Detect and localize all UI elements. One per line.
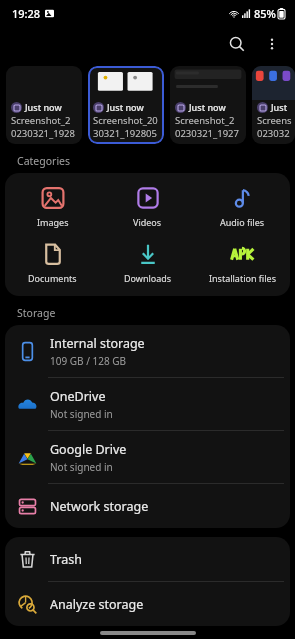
staticText: Screenshot_2 [175,114,235,127]
staticText: 19:28 [12,6,41,21]
button[interactable]: Network storage [5,484,290,528]
button[interactable]: Just now [170,66,246,144]
button[interactable]: Downloads [100,238,195,287]
staticText: Documents [28,272,77,284]
button[interactable]: Videos [100,182,195,231]
staticText: 0230321_1 [257,127,293,140]
staticText: Google Drive [50,441,127,458]
staticText: Not signed in [50,460,113,474]
button[interactable]: Search [219,26,255,62]
staticText: Storage [17,306,56,320]
staticText: Screenshot_202 [93,114,162,127]
staticText: 30321_192805… [93,127,162,140]
button[interactable]: More options [255,27,289,61]
staticText: Installation files [209,272,276,284]
button[interactable]: Audio files [195,182,290,231]
staticText: Network storage [50,498,149,515]
staticText: Not signed in [50,407,113,421]
button[interactable]: Analyze storage [5,582,290,626]
button[interactable]: Images [5,182,100,231]
staticText: Just now [189,101,226,113]
button[interactable]: OneDrive [5,378,290,430]
staticText: Screenshot_2 [11,114,71,127]
button[interactable]: Just now [252,66,295,144]
staticText: Audio files [220,216,265,228]
staticText: 109 GB / 128 GB [50,354,126,368]
staticText: Categories [17,154,71,168]
button[interactable]: Trash [5,537,290,581]
staticText: Just now [25,101,62,113]
staticText: Trash [50,551,82,568]
staticText: Downloads [124,272,172,284]
button[interactable]: Installation files [195,238,290,287]
staticText: OneDrive [50,388,106,405]
button[interactable]: Documents [5,238,100,287]
staticText: Images [37,216,69,228]
staticText: Just now [271,101,293,113]
staticText: 0230321_1928… [11,127,80,140]
button[interactable]: Internal storage [5,325,290,377]
button[interactable]: Just now [88,66,164,144]
staticText: 0230321_1927… [175,127,244,140]
staticText: Screensho [257,114,293,127]
button[interactable]: Just now [6,66,82,144]
staticText: 85% [254,6,276,21]
staticText: Videos [133,216,162,228]
staticText: Analyze storage [50,596,144,613]
button[interactable]: Google Drive [5,431,290,483]
staticText: Internal storage [50,335,145,352]
staticText: Just now [107,101,144,113]
